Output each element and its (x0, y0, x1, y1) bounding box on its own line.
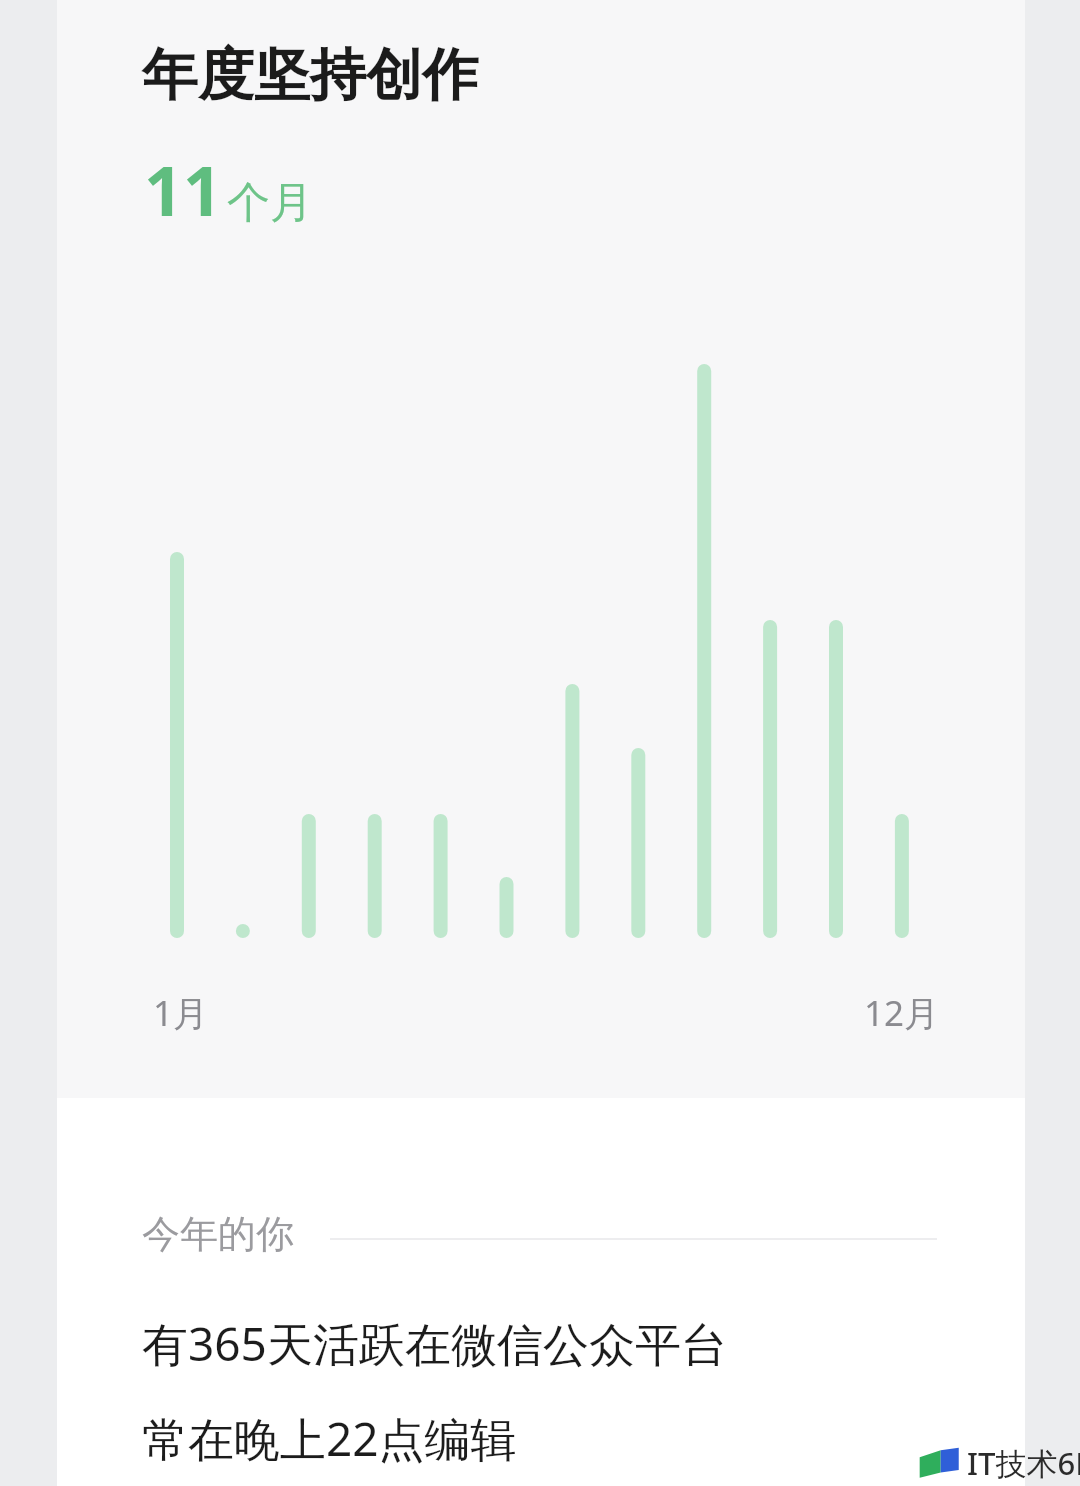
staticText: 有365天活跃在微信公众平台 (142, 1312, 727, 1375)
staticText: 常在晚上22点编辑 (142, 1407, 517, 1470)
staticText: 11 (144, 143, 222, 236)
staticText: 个月 (227, 176, 313, 230)
staticText: 1月 (153, 989, 209, 1037)
staticText: IT技术6HU (967, 1442, 1080, 1484)
staticText: 年度坚持创作 (142, 40, 478, 111)
button[interactable]: IT技术 watermark (918, 1442, 1080, 1484)
staticText: 今年的你 (142, 1210, 294, 1258)
staticText: 12月 (864, 989, 940, 1037)
